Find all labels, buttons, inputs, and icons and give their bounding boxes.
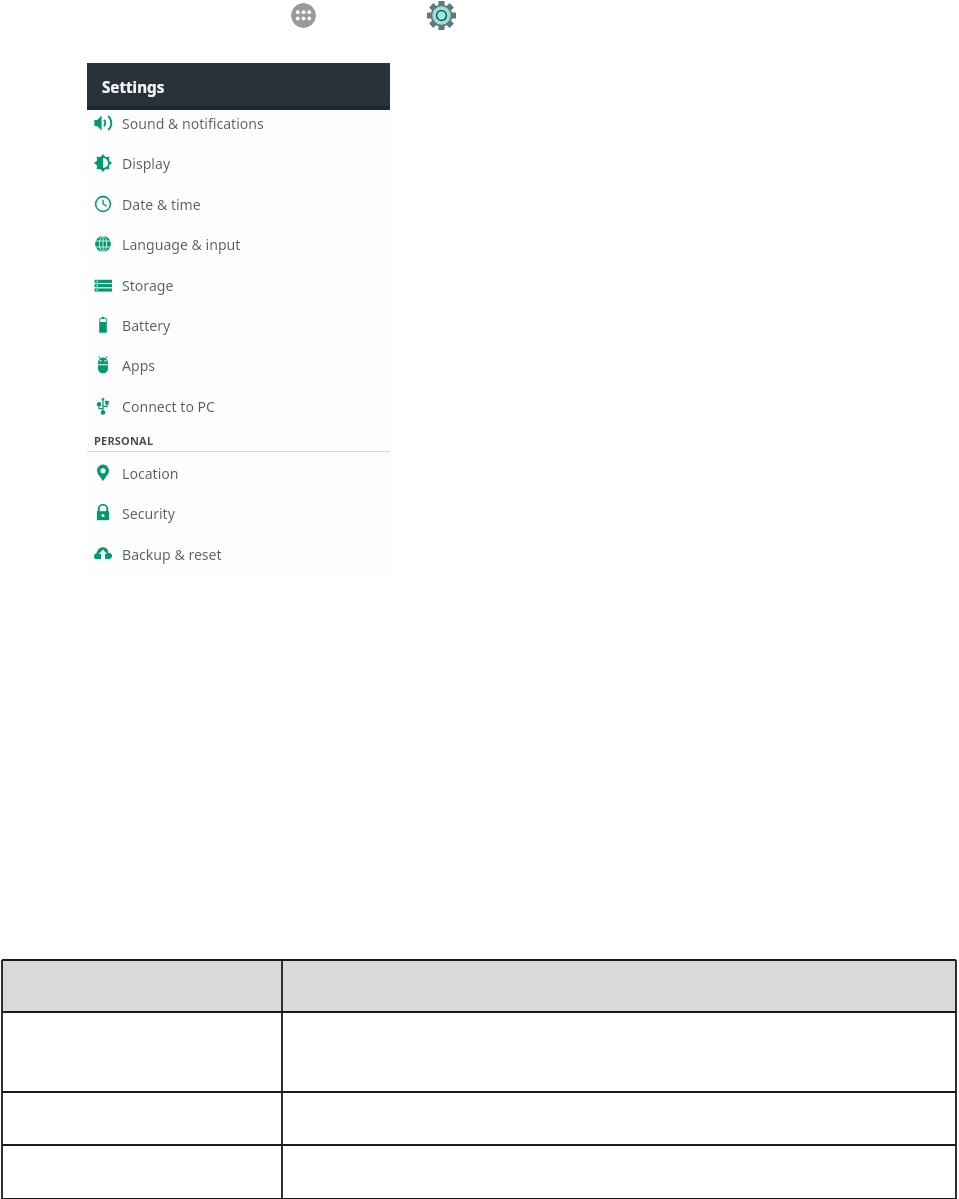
button[interactable]: Location [87,453,390,493]
button[interactable]: Backup & reset [87,534,390,574]
staticText: Sound & notifications [122,114,264,133]
staticText: Apps [122,356,156,375]
staticText: Backup & reset [122,545,222,564]
staticText: Connect to PC [122,397,216,416]
button[interactable]: Display [87,143,390,183]
staticText: Battery [122,316,171,335]
staticText: Date & time [122,195,201,214]
button[interactable]: Language & input [87,224,390,264]
staticText: Language & input [122,235,241,254]
staticText: Settings [102,77,165,98]
button[interactable]: All apps [291,3,316,28]
staticText: Location [122,464,179,483]
staticText: PERSONAL [94,433,154,448]
staticText: Storage [122,276,174,295]
staticText: Display [122,154,171,173]
button[interactable]: Security [87,493,390,533]
button[interactable]: Storage [87,265,390,305]
button[interactable]: Settings [87,63,390,110]
button[interactable]: Battery [87,305,390,345]
button[interactable]: Settings [427,1,456,30]
button[interactable]: Date & time [87,184,390,224]
button[interactable]: Sound & notifications [87,103,390,143]
button[interactable]: Apps [87,345,390,385]
staticText: Security [122,504,175,523]
button[interactable]: Connect to PC [87,386,390,426]
